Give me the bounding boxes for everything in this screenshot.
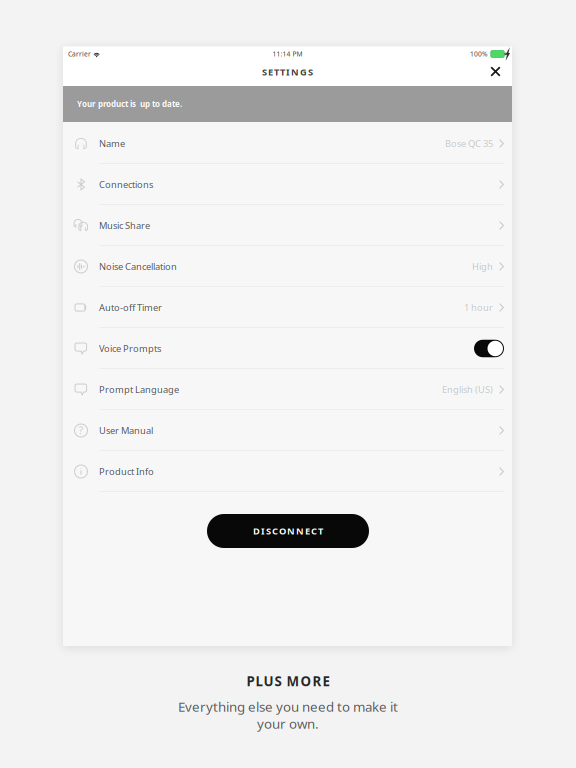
button[interactable]: Close (480, 58, 510, 84)
button[interactable]: ? (63, 410, 512, 451)
staticText: Voice Prompts (99, 342, 161, 355)
button[interactable]: Auto-off Timer (63, 287, 512, 328)
staticText: S E T T I N G S (262, 66, 313, 78)
staticText: Carrier (68, 50, 91, 58)
button[interactable]: Noise Cancellation (63, 246, 512, 287)
staticText: Prompt Language (99, 383, 179, 396)
staticText: Your product is up to date. (77, 99, 182, 109)
staticText: Music Share (99, 219, 150, 232)
staticText: Auto-off Timer (99, 301, 162, 314)
button[interactable]: Name (63, 123, 512, 164)
staticText: User Manual (99, 424, 153, 437)
staticText: Everything else you need to make it (178, 698, 398, 715)
button[interactable]: Voice Prompts (63, 328, 512, 369)
staticText: 1 hour (464, 301, 493, 314)
button[interactable]: Connections (63, 164, 512, 205)
button[interactable]: Prompt Language (63, 369, 512, 410)
staticText: Connections (99, 178, 153, 191)
staticText: Name (99, 137, 125, 150)
staticText: 11:14 PM (272, 50, 302, 58)
staticText: High (472, 260, 493, 273)
button[interactable]: Music Share (63, 205, 512, 246)
staticText: Bose QC 35 (445, 137, 493, 150)
staticText: D I S C O N N E C T (253, 525, 323, 537)
staticText: P L U S M O R E (246, 672, 329, 690)
staticText: your own. (257, 715, 319, 732)
button[interactable]: D I S C O N N E C T (207, 514, 369, 548)
staticText: Product Info (99, 465, 154, 478)
button[interactable]: Product Info (63, 451, 512, 492)
staticText: English (US) (442, 383, 493, 396)
staticText: ? (78, 423, 83, 437)
staticText: Noise Cancellation (99, 260, 177, 273)
staticText: 100% (470, 50, 488, 58)
